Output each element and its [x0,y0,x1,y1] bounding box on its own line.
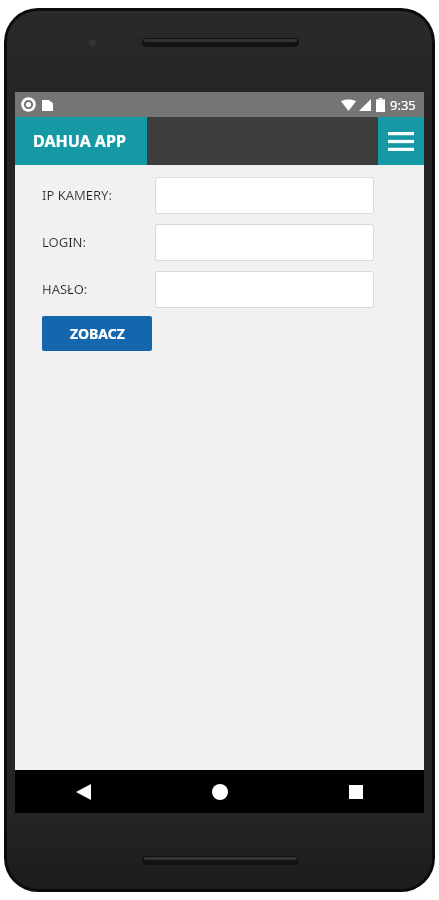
button[interactable]: ZOBACZ [42,316,152,351]
staticText: DAHUA APP [33,130,126,152]
button[interactable]: Menu [378,117,424,165]
staticText: LOGIN: [42,233,86,251]
staticText: HASŁO: [42,280,88,298]
button[interactable]: Back [15,770,152,813]
button[interactable]: DAHUA APP [15,117,147,165]
staticText: IP KAMERY: [42,186,112,204]
button[interactable]: Recent apps [288,770,424,813]
staticText: ZOBACZ [70,324,125,343]
staticText: 9:35 [390,96,416,114]
button[interactable]: Home [152,770,288,813]
